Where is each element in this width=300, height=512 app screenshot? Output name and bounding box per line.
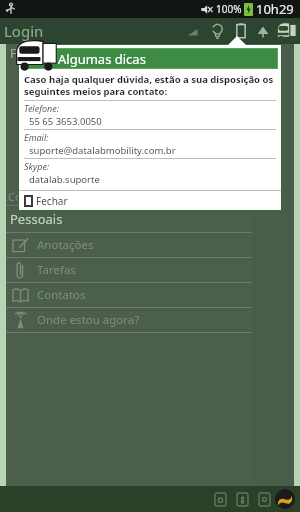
staticText: suporte@datalabmobility.com.br bbox=[29, 144, 176, 157]
staticText: Login bbox=[4, 21, 44, 41]
button[interactable]: Onde estou agora? bbox=[6, 308, 252, 332]
button[interactable]: Dicas bbox=[205, 19, 229, 43]
button[interactable]: Anotações bbox=[6, 233, 252, 257]
staticText: Financeiro bbox=[176, 189, 230, 204]
button[interactable]: Contatos bbox=[6, 283, 252, 307]
staticText: Telefone: bbox=[24, 102, 60, 114]
staticText: Email: bbox=[24, 131, 49, 143]
staticText: Caso haja qualquer dúvida, estão a sua d… bbox=[24, 73, 276, 98]
staticText: Algumas dicas bbox=[58, 50, 146, 68]
staticText: Fechar bbox=[36, 194, 68, 208]
staticText: Pessoais bbox=[10, 210, 63, 228]
button[interactable]: Bateria bbox=[229, 19, 253, 43]
button[interactable]: Acao 1 bbox=[209, 488, 231, 510]
staticText: Para bbox=[256, 68, 280, 83]
staticText: 100% bbox=[216, 2, 242, 16]
button[interactable]: Menu bbox=[275, 489, 295, 509]
staticText: Correio bbox=[8, 189, 47, 204]
staticText: Onde estou agora? bbox=[37, 312, 140, 328]
button[interactable]: Acao 2 bbox=[231, 488, 253, 510]
staticText: datalab.suporte bbox=[29, 173, 100, 186]
staticText: Anotações bbox=[37, 237, 94, 253]
staticText: Tarefas bbox=[37, 262, 76, 278]
staticText: Manifesto bbox=[95, 189, 147, 204]
staticText: Funcionalidades bbox=[10, 45, 102, 61]
button[interactable]: Acao 3 bbox=[253, 488, 275, 510]
staticText: Contatos bbox=[37, 287, 86, 303]
staticText: 55 65 3653.0050 bbox=[29, 115, 102, 128]
button[interactable]: Conexao bbox=[253, 21, 273, 41]
button[interactable]: Tarefas bbox=[6, 258, 252, 282]
button[interactable]: Correio bbox=[8, 188, 88, 205]
button[interactable]: Financeiro bbox=[169, 188, 250, 205]
staticText: Skype: bbox=[24, 160, 50, 172]
button[interactable]: Manifesto bbox=[88, 188, 169, 205]
staticText: 10h29 bbox=[256, 0, 294, 18]
button[interactable]: Fechar bbox=[18, 191, 282, 211]
button[interactable]: Veiculo bbox=[273, 18, 299, 44]
